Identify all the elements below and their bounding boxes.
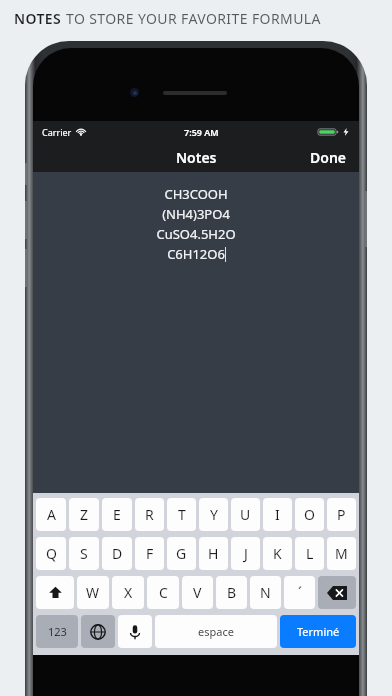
staticText: J	[244, 544, 248, 563]
button[interactable]: Y	[199, 498, 228, 531]
staticText: Notes	[176, 148, 217, 167]
staticText: 7:59 AM	[184, 126, 219, 138]
button[interactable]: V	[182, 576, 213, 609]
button[interactable]: 123	[36, 615, 78, 648]
button[interactable]: B	[216, 576, 247, 609]
staticText: N	[260, 583, 271, 602]
staticText: Y	[210, 505, 218, 524]
button[interactable]: S	[69, 537, 99, 570]
staticText: Terminé	[297, 624, 340, 639]
button[interactable]: T	[167, 498, 196, 531]
staticText: (NH4)3PO4	[162, 205, 230, 223]
staticText: F	[146, 544, 154, 563]
button[interactable]: E	[102, 498, 132, 531]
button[interactable]: Z	[69, 498, 99, 531]
staticText: X	[124, 583, 133, 602]
button[interactable]: ´	[284, 576, 315, 609]
staticText: T	[178, 505, 186, 524]
button[interactable]: M	[327, 537, 356, 570]
staticText: Q	[46, 544, 57, 563]
staticText: C	[159, 583, 168, 602]
button[interactable]: O	[295, 498, 324, 531]
staticText: M	[335, 544, 348, 563]
staticText: B	[227, 583, 237, 602]
button[interactable]: espace	[155, 615, 277, 648]
button[interactable]: P	[327, 498, 356, 531]
button[interactable]: G	[167, 537, 196, 570]
staticText: ´	[298, 583, 302, 602]
staticText: W	[86, 583, 100, 602]
button[interactable]: H	[199, 537, 228, 570]
staticText: D	[112, 544, 123, 563]
staticText: TO STORE YOUR FAVORITE FORMULA	[66, 9, 321, 28]
staticText: Z	[80, 505, 89, 524]
staticText: O	[304, 505, 315, 524]
button[interactable]: R	[135, 498, 164, 531]
button[interactable]: Q	[36, 537, 66, 570]
staticText: NOTES	[14, 9, 66, 28]
staticText: P	[337, 505, 346, 524]
staticText: C6H12O6	[167, 245, 225, 263]
staticText: E	[113, 505, 121, 524]
button[interactable]: U	[231, 498, 260, 531]
button[interactable]: N	[250, 576, 281, 609]
staticText: I	[275, 505, 280, 524]
button[interactable]: L	[295, 537, 324, 570]
button[interactable]: X	[112, 576, 144, 609]
staticText: U	[240, 505, 251, 524]
button[interactable]: Terminé	[280, 615, 356, 648]
staticText: CH3COOH	[164, 185, 228, 203]
staticText: A	[47, 505, 56, 524]
button[interactable]: F	[135, 537, 164, 570]
staticText: CuSO4.5H2O	[156, 225, 236, 243]
staticText: G	[176, 544, 187, 563]
button[interactable]: D	[102, 537, 132, 570]
button[interactable]: Change language	[81, 615, 115, 648]
button[interactable]: W	[77, 576, 109, 609]
staticText: K	[273, 544, 282, 563]
button[interactable]: Done	[298, 143, 359, 172]
staticText: R	[145, 505, 154, 524]
button[interactable]: I	[263, 498, 292, 531]
staticText: Carrier	[42, 126, 72, 138]
button[interactable]: Dictation	[118, 615, 152, 648]
staticText: L	[306, 544, 314, 563]
button[interactable]: A	[36, 498, 66, 531]
staticText: espace	[198, 624, 234, 639]
button[interactable]: Backspace	[318, 576, 356, 609]
button[interactable]: K	[263, 537, 292, 570]
staticText: H	[208, 544, 219, 563]
staticText: V	[193, 583, 202, 602]
button[interactable]: Shift	[36, 576, 74, 609]
staticText: S	[80, 544, 88, 563]
staticText: 123	[48, 624, 67, 639]
button[interactable]: J	[231, 537, 260, 570]
button[interactable]: C	[147, 576, 179, 609]
staticText: Done	[310, 148, 347, 167]
